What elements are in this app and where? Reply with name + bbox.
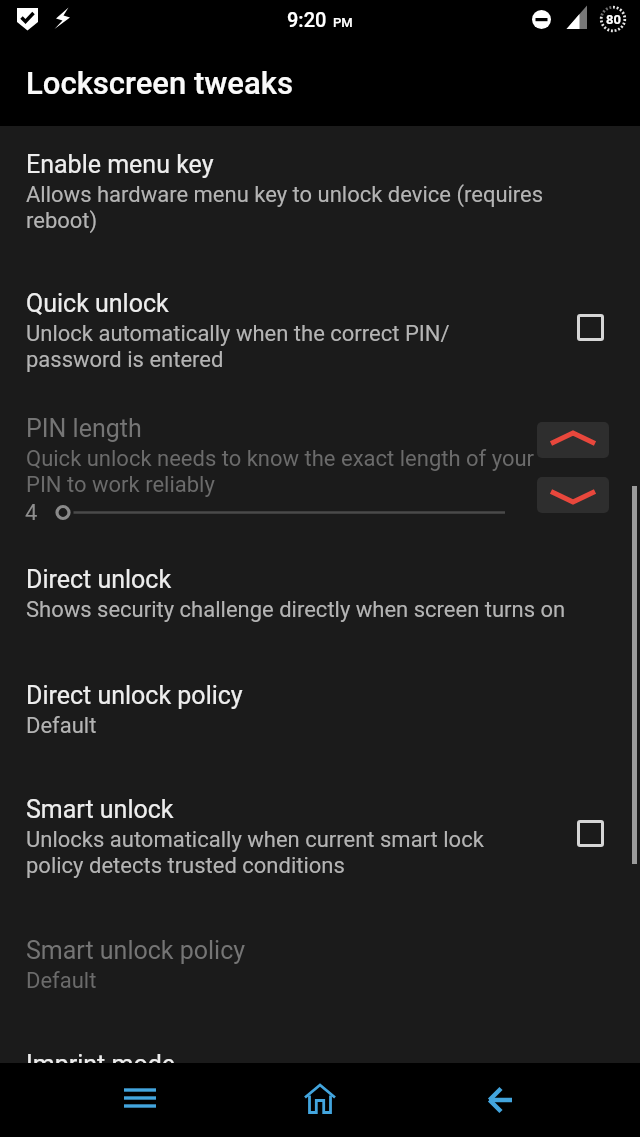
button[interactable] bbox=[537, 477, 609, 513]
button[interactable] bbox=[537, 422, 609, 458]
staticText: Smart unlock bbox=[26, 795, 174, 824]
staticText: PIN length bbox=[26, 414, 142, 443]
button[interactable]: Enable menu key bbox=[0, 125, 640, 247]
staticText: Default bbox=[26, 713, 97, 739]
staticText: Direct unlock bbox=[26, 565, 172, 594]
staticText: PM bbox=[333, 15, 353, 30]
staticText: 80 bbox=[606, 12, 621, 27]
staticText: Unlock automatically when the correct PI… bbox=[26, 321, 450, 373]
staticText: Default bbox=[26, 968, 97, 994]
staticText: Quick unlock needs to know the exact len… bbox=[26, 446, 535, 498]
staticText: Lockscreen tweaks bbox=[26, 65, 293, 101]
staticText: 9:20 bbox=[287, 8, 327, 31]
button[interactable]: Smart unlock bbox=[0, 771, 640, 911]
staticText: Imprint mode bbox=[26, 1050, 176, 1079]
button[interactable]: Imprint mode bbox=[0, 1025, 640, 1103]
button[interactable] bbox=[468, 1068, 532, 1132]
button[interactable] bbox=[577, 314, 604, 341]
staticText: 4 bbox=[25, 500, 38, 526]
staticText: Unlocks automatically when current smart… bbox=[26, 827, 484, 879]
staticText: Smart unlock policy bbox=[26, 936, 246, 965]
button[interactable] bbox=[108, 1066, 172, 1130]
staticText: Shows security challenge directly when s… bbox=[26, 597, 566, 623]
staticText: Enable menu key bbox=[26, 150, 214, 179]
button[interactable]: Quick unlock bbox=[0, 265, 640, 389]
button[interactable] bbox=[288, 1069, 352, 1133]
button[interactable]: Direct unlock bbox=[0, 541, 640, 656]
staticText: Quick unlock bbox=[26, 289, 169, 318]
button[interactable]: Direct unlock policy bbox=[0, 656, 640, 771]
staticText: Allows hardware menu key to unlock devic… bbox=[26, 182, 544, 234]
button[interactable] bbox=[577, 820, 604, 847]
staticText: Direct unlock policy bbox=[26, 681, 243, 710]
